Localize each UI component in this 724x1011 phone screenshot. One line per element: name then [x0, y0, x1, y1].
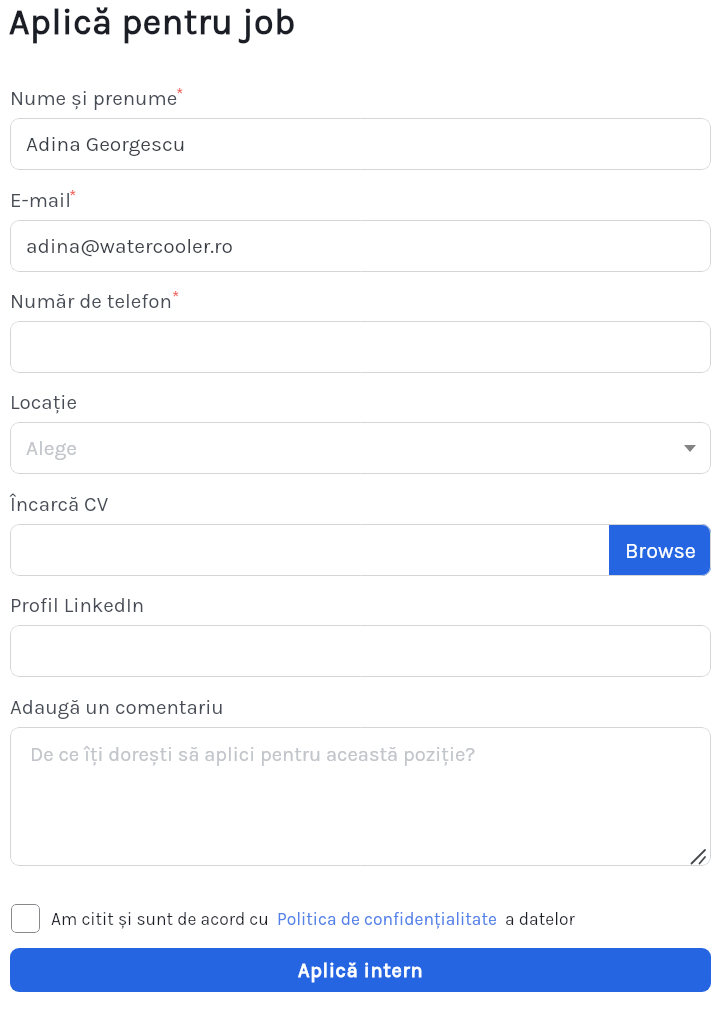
- staticText: Adaugă un comentariu: [10, 695, 224, 719]
- button[interactable]: Alege: [10, 422, 711, 474]
- staticText: *: [172, 287, 180, 308]
- staticText: adina@watercooler.ro: [26, 234, 234, 258]
- staticText: Nume și prenume: [10, 86, 178, 110]
- staticText: Încarcă CV: [10, 492, 109, 516]
- staticText: *: [69, 186, 77, 207]
- staticText: Adina Georgescu: [26, 132, 186, 156]
- staticText: Aplică intern: [298, 959, 424, 982]
- staticText: E-mail: [10, 188, 71, 212]
- button[interactable]: [10, 321, 711, 373]
- button[interactable]: Browse: [609, 524, 711, 576]
- staticText: Număr de telefon: [10, 289, 172, 313]
- staticText: Aplică pentru job: [9, 1, 296, 43]
- button[interactable]: Accept privacy policy: [11, 904, 40, 933]
- button[interactable]: Adina Georgescu: [10, 118, 711, 170]
- staticText: Profil LinkedIn: [10, 593, 145, 617]
- staticText: Locație: [10, 390, 77, 414]
- staticText: Browse: [625, 538, 696, 563]
- staticText: *: [176, 84, 184, 105]
- button[interactable]: Aplică intern: [10, 948, 711, 992]
- button[interactable]: De ce îți dorești să aplici pentru aceas…: [10, 727, 711, 866]
- button[interactable]: [10, 625, 711, 677]
- button[interactable]: Am citit și sunt de acord cu Politica de…: [51, 909, 575, 929]
- staticText: Alege: [26, 436, 78, 460]
- staticText: Am citit și sunt de acord cu Politica de…: [51, 909, 575, 929]
- staticText: De ce îți dorești să aplici pentru aceas…: [30, 743, 476, 767]
- button[interactable]: adina@watercooler.ro: [10, 220, 711, 272]
